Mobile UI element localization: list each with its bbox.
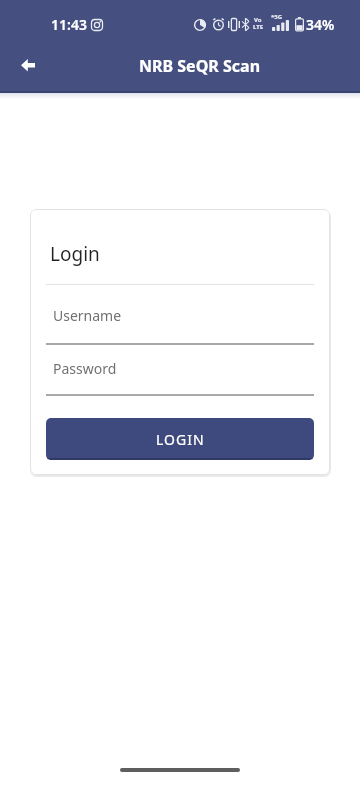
staticText: Username <box>53 306 122 325</box>
staticText: Login <box>50 241 100 267</box>
staticText: LTE <box>253 23 264 31</box>
staticText: Vo <box>254 16 262 24</box>
staticText: Password <box>53 359 117 378</box>
button[interactable]: Username <box>46 299 314 345</box>
button[interactable] <box>8 51 48 79</box>
staticText: 34% <box>306 15 335 34</box>
button[interactable]: LOGIN <box>46 418 314 460</box>
staticText: 11:43 <box>51 15 87 34</box>
button[interactable]: Password <box>46 350 314 396</box>
staticText: *5G <box>271 13 283 21</box>
staticText: NRB SeQR Scan <box>139 55 261 77</box>
staticText: LOGIN <box>156 430 205 449</box>
